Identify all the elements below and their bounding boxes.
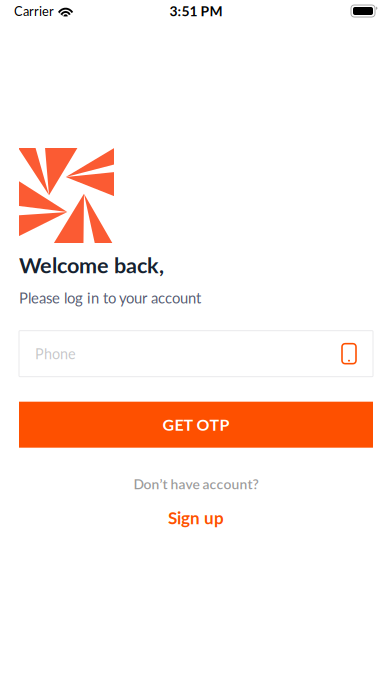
staticText: GET OTP xyxy=(162,415,229,434)
button[interactable]: Sign up xyxy=(168,507,224,528)
staticText: Sign up xyxy=(168,507,224,528)
staticText: Phone xyxy=(35,345,76,362)
staticText: Carrier xyxy=(14,3,54,19)
button[interactable]: GET OTP xyxy=(19,402,373,448)
staticText: Welcome back, xyxy=(19,252,164,278)
staticText: 3:51 PM xyxy=(169,3,222,19)
staticText: Don’t have account? xyxy=(133,476,258,492)
staticText: Please log in to your account xyxy=(19,289,201,307)
